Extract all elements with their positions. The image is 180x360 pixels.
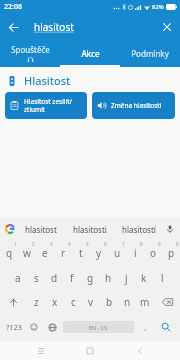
button[interactable]: Back xyxy=(0,14,26,40)
button[interactable]: m xyxy=(136,290,154,314)
staticText: 0 xyxy=(176,241,179,247)
button[interactable]: hlasitosti xyxy=(65,218,114,240)
staticText: g xyxy=(87,271,94,285)
button[interactable]: hlasitostí xyxy=(114,218,163,240)
staticText: s xyxy=(34,271,39,285)
button[interactable]: j xyxy=(117,265,135,290)
button[interactable]: EN · CS xyxy=(63,321,134,333)
staticText: n xyxy=(124,295,131,309)
staticText: z xyxy=(34,295,39,309)
button[interactable]: v xyxy=(82,290,100,314)
staticText: t xyxy=(79,246,83,260)
staticText: v xyxy=(88,295,94,309)
button[interactable]: Google xyxy=(3,222,17,236)
button[interactable]: Shift xyxy=(0,290,27,314)
button[interactable]: z xyxy=(27,290,46,314)
staticText: c xyxy=(71,295,76,309)
button[interactable]: i xyxy=(126,240,144,265)
button[interactable]: . xyxy=(136,314,154,340)
button[interactable]: g xyxy=(81,265,99,290)
staticText: o xyxy=(150,246,157,260)
button[interactable]: Back xyxy=(131,342,149,360)
staticText: Akce xyxy=(81,48,100,59)
staticText: b xyxy=(106,295,113,309)
button[interactable]: t xyxy=(72,240,90,265)
button[interactable]: hlasitost xyxy=(17,218,65,240)
staticText: 2 xyxy=(32,241,35,247)
button[interactable]: Recent apps xyxy=(32,342,50,360)
staticText: hlasitosti xyxy=(73,224,107,235)
staticText: h xyxy=(105,271,112,285)
staticText: w xyxy=(23,246,31,260)
staticText: x xyxy=(52,295,58,309)
staticText: Spouštěče xyxy=(11,44,50,55)
button[interactable]: Spouštěče xyxy=(0,40,60,67)
staticText: 9 xyxy=(158,241,161,247)
button[interactable]: Hlasitost zesílit/ ztlumit xyxy=(5,92,87,119)
staticText: 7 xyxy=(122,241,125,247)
button[interactable]: c xyxy=(64,290,82,314)
button[interactable]: h xyxy=(99,265,117,290)
button[interactable]: ?123 xyxy=(3,314,25,340)
staticText: hlasitostí xyxy=(122,224,156,235)
button[interactable]: p xyxy=(162,240,180,265)
button[interactable]: Change language xyxy=(43,314,61,340)
staticText: u xyxy=(114,246,121,260)
staticText: l xyxy=(161,271,164,285)
staticText: j xyxy=(125,271,128,285)
button[interactable]: w xyxy=(18,240,36,265)
staticText: p xyxy=(168,246,175,260)
button[interactable]: e xyxy=(36,240,54,265)
button[interactable]: r xyxy=(54,240,72,265)
staticText: . xyxy=(144,320,147,334)
button[interactable]: Search xyxy=(154,314,177,340)
button[interactable]: a xyxy=(9,265,27,290)
button[interactable]: q xyxy=(0,240,18,265)
button[interactable]: Hlasitost xyxy=(7,73,180,88)
staticText: ?123 xyxy=(6,322,23,332)
button[interactable]: Voice input xyxy=(163,222,177,236)
button[interactable]: s xyxy=(27,265,45,290)
button[interactable]: hlasitost xyxy=(34,14,154,40)
staticText: 3 xyxy=(50,241,53,247)
staticText: EN · CS xyxy=(89,324,108,331)
staticText: m xyxy=(140,295,150,309)
staticText: i xyxy=(134,246,137,260)
staticText: hlasitost xyxy=(34,20,74,34)
button[interactable]: d xyxy=(45,265,63,290)
staticText: 82% xyxy=(152,3,164,11)
button[interactable]: k xyxy=(135,265,153,290)
button[interactable]: Akce xyxy=(60,40,120,67)
staticText: Hlasitost xyxy=(24,73,71,88)
staticText: 1 xyxy=(14,241,17,247)
button[interactable]: Emoji xyxy=(25,314,43,340)
staticText: 4 xyxy=(68,241,71,247)
staticText: Hlasitost zesílit/ ztlumit xyxy=(24,97,72,114)
button[interactable]: f xyxy=(63,265,81,290)
button[interactable]: o xyxy=(144,240,162,265)
button[interactable]: n xyxy=(118,290,136,314)
staticText: d xyxy=(51,271,58,285)
staticText: f xyxy=(70,271,74,285)
staticText: k xyxy=(141,271,147,285)
staticText: 8 xyxy=(140,241,143,247)
button[interactable]: l xyxy=(153,265,171,290)
staticText: 6 xyxy=(104,241,107,247)
staticText: Podmínky xyxy=(131,48,169,59)
button[interactable]: u xyxy=(108,240,126,265)
button[interactable]: y xyxy=(90,240,108,265)
staticText: y xyxy=(96,246,102,260)
staticText: 5 xyxy=(86,241,89,247)
button[interactable]: x xyxy=(46,290,64,314)
staticText: r xyxy=(61,246,66,260)
button[interactable]: Clear search xyxy=(154,14,180,40)
staticText: e xyxy=(42,246,48,260)
button[interactable]: b xyxy=(100,290,118,314)
staticText: hlasitost xyxy=(25,224,57,235)
button[interactable]: Změna hlasitosti xyxy=(92,92,175,119)
staticText: q xyxy=(6,246,13,260)
button[interactable]: Podmínky xyxy=(120,40,180,67)
button[interactable]: Home xyxy=(81,342,99,360)
button[interactable]: Backspace xyxy=(154,290,180,314)
staticText: 22:06 xyxy=(4,2,22,12)
